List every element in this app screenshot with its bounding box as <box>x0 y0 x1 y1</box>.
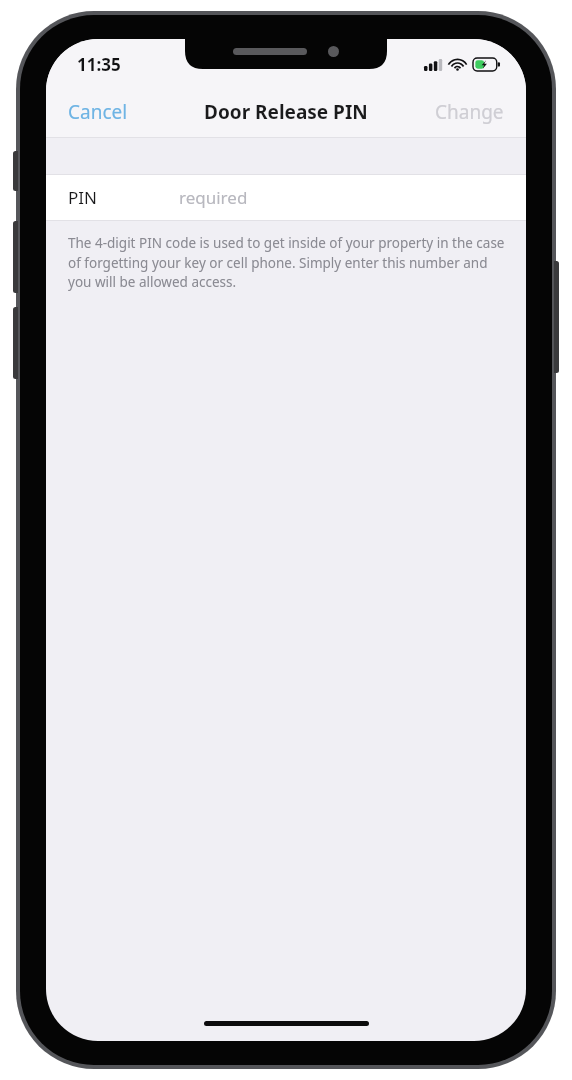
staticText: Door Release PIN <box>204 99 368 125</box>
staticText: Cancel <box>68 99 128 125</box>
staticText: Change <box>435 99 504 125</box>
staticText: PIN <box>68 186 97 209</box>
button[interactable]: Cancel <box>46 91 150 133</box>
staticText: required <box>179 186 248 209</box>
button[interactable]: PIN <box>46 175 526 220</box>
button[interactable]: Change <box>413 91 526 133</box>
staticText: 11:35 <box>77 53 121 76</box>
staticText: The 4-digit PIN code is used to get insi… <box>68 234 506 291</box>
